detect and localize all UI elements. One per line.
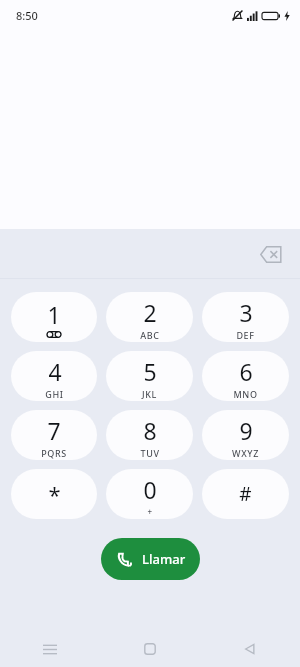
staticText: 7 — [47, 415, 61, 446]
staticText: * — [48, 479, 61, 509]
button[interactable]: Home — [100, 631, 200, 667]
staticText: 8:50 — [16, 8, 38, 23]
button[interactable]: 8 — [106, 410, 193, 460]
button[interactable]: * — [11, 469, 97, 519]
staticText: 5 — [143, 356, 157, 387]
button[interactable]: 5 — [106, 351, 193, 401]
button[interactable]: 4 — [11, 351, 97, 401]
staticText: Llamar — [142, 550, 186, 568]
staticText: 1 — [47, 299, 61, 330]
staticText: WXYZ — [232, 447, 259, 459]
button[interactable]: # — [202, 469, 289, 519]
staticText: 9 — [239, 415, 253, 446]
staticText: PQRS — [41, 447, 67, 459]
staticText: TUV — [140, 447, 160, 459]
button[interactable]: 0 — [106, 469, 193, 519]
staticText: 0 — [143, 474, 157, 505]
staticText: JKL — [142, 388, 157, 400]
staticText: 6 — [239, 356, 253, 387]
button[interactable]: 1 — [11, 292, 97, 342]
button[interactable]: Back — [200, 631, 300, 667]
button[interactable]: Llamar — [101, 538, 200, 580]
staticText: 2 — [143, 297, 157, 328]
staticText: DEF — [236, 329, 255, 341]
staticText: MNO — [233, 388, 258, 400]
button[interactable]: 9 — [202, 410, 289, 460]
staticText: 4 — [48, 356, 62, 387]
button[interactable]: 7 — [11, 410, 97, 460]
staticText: 3 — [239, 297, 253, 328]
button[interactable]: 6 — [202, 351, 289, 401]
button[interactable]: Recent apps — [0, 631, 100, 667]
button[interactable]: Backspace — [254, 237, 288, 271]
staticText: 8 — [143, 415, 157, 446]
button[interactable]: 2 — [106, 292, 193, 342]
staticText: ABC — [140, 329, 160, 341]
button[interactable]: 3 — [202, 292, 289, 342]
staticText: # — [239, 481, 252, 507]
staticText: + — [147, 506, 153, 517]
staticText: GHI — [45, 388, 64, 400]
